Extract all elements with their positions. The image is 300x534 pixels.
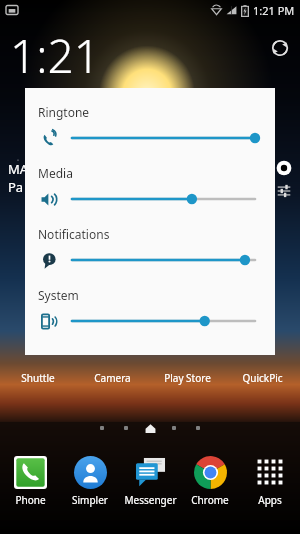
staticText: Play Store	[164, 371, 211, 385]
button[interactable]: Play Store	[150, 371, 225, 385]
staticText: Notifications	[38, 226, 110, 242]
button[interactable]: System	[38, 287, 259, 332]
button[interactable]: Page 5	[186, 420, 210, 436]
button[interactable]: Phone	[0, 452, 60, 509]
button[interactable]: Simpler	[60, 452, 120, 509]
staticText: 1:21 PM	[253, 3, 295, 18]
button[interactable]: Ringtone	[38, 104, 259, 149]
staticText: Shuttle	[21, 371, 55, 385]
button[interactable]: Refresh	[268, 36, 292, 60]
button[interactable]: Home page	[138, 420, 162, 436]
button[interactable]: Shuttle	[0, 371, 75, 385]
staticText: QuickPic	[242, 371, 283, 385]
staticText: Camera	[94, 371, 131, 385]
staticText: Pa	[8, 178, 24, 196]
button[interactable]: Apps	[240, 452, 300, 509]
staticText: Simpler	[72, 493, 108, 507]
staticText: Phone	[15, 493, 46, 507]
button[interactable]: Page 1	[90, 420, 114, 436]
button[interactable]: Chrome	[180, 452, 240, 509]
button[interactable]: MA	[6, 158, 31, 198]
button[interactable]: 1:21	[8, 24, 103, 87]
button[interactable]: QuickPic	[225, 371, 300, 385]
button[interactable]: Page 2	[114, 420, 138, 436]
staticText: Media	[38, 165, 73, 181]
staticText: Ringtone	[38, 104, 90, 120]
button[interactable]: Notifications	[38, 226, 259, 271]
staticText: Chrome	[191, 493, 229, 507]
staticText: 1:21	[10, 24, 101, 87]
staticText: MA	[8, 160, 29, 178]
staticText: Apps	[258, 493, 282, 507]
button[interactable]: Record	[276, 160, 292, 176]
button[interactable]: Settings	[277, 184, 291, 198]
button[interactable]: Media	[38, 165, 259, 210]
button[interactable]: Messenger	[120, 452, 180, 509]
staticText: Messenger	[124, 493, 177, 507]
staticText: System	[38, 287, 79, 303]
button[interactable]: Page 4	[162, 420, 186, 436]
button[interactable]: Camera	[75, 371, 150, 385]
